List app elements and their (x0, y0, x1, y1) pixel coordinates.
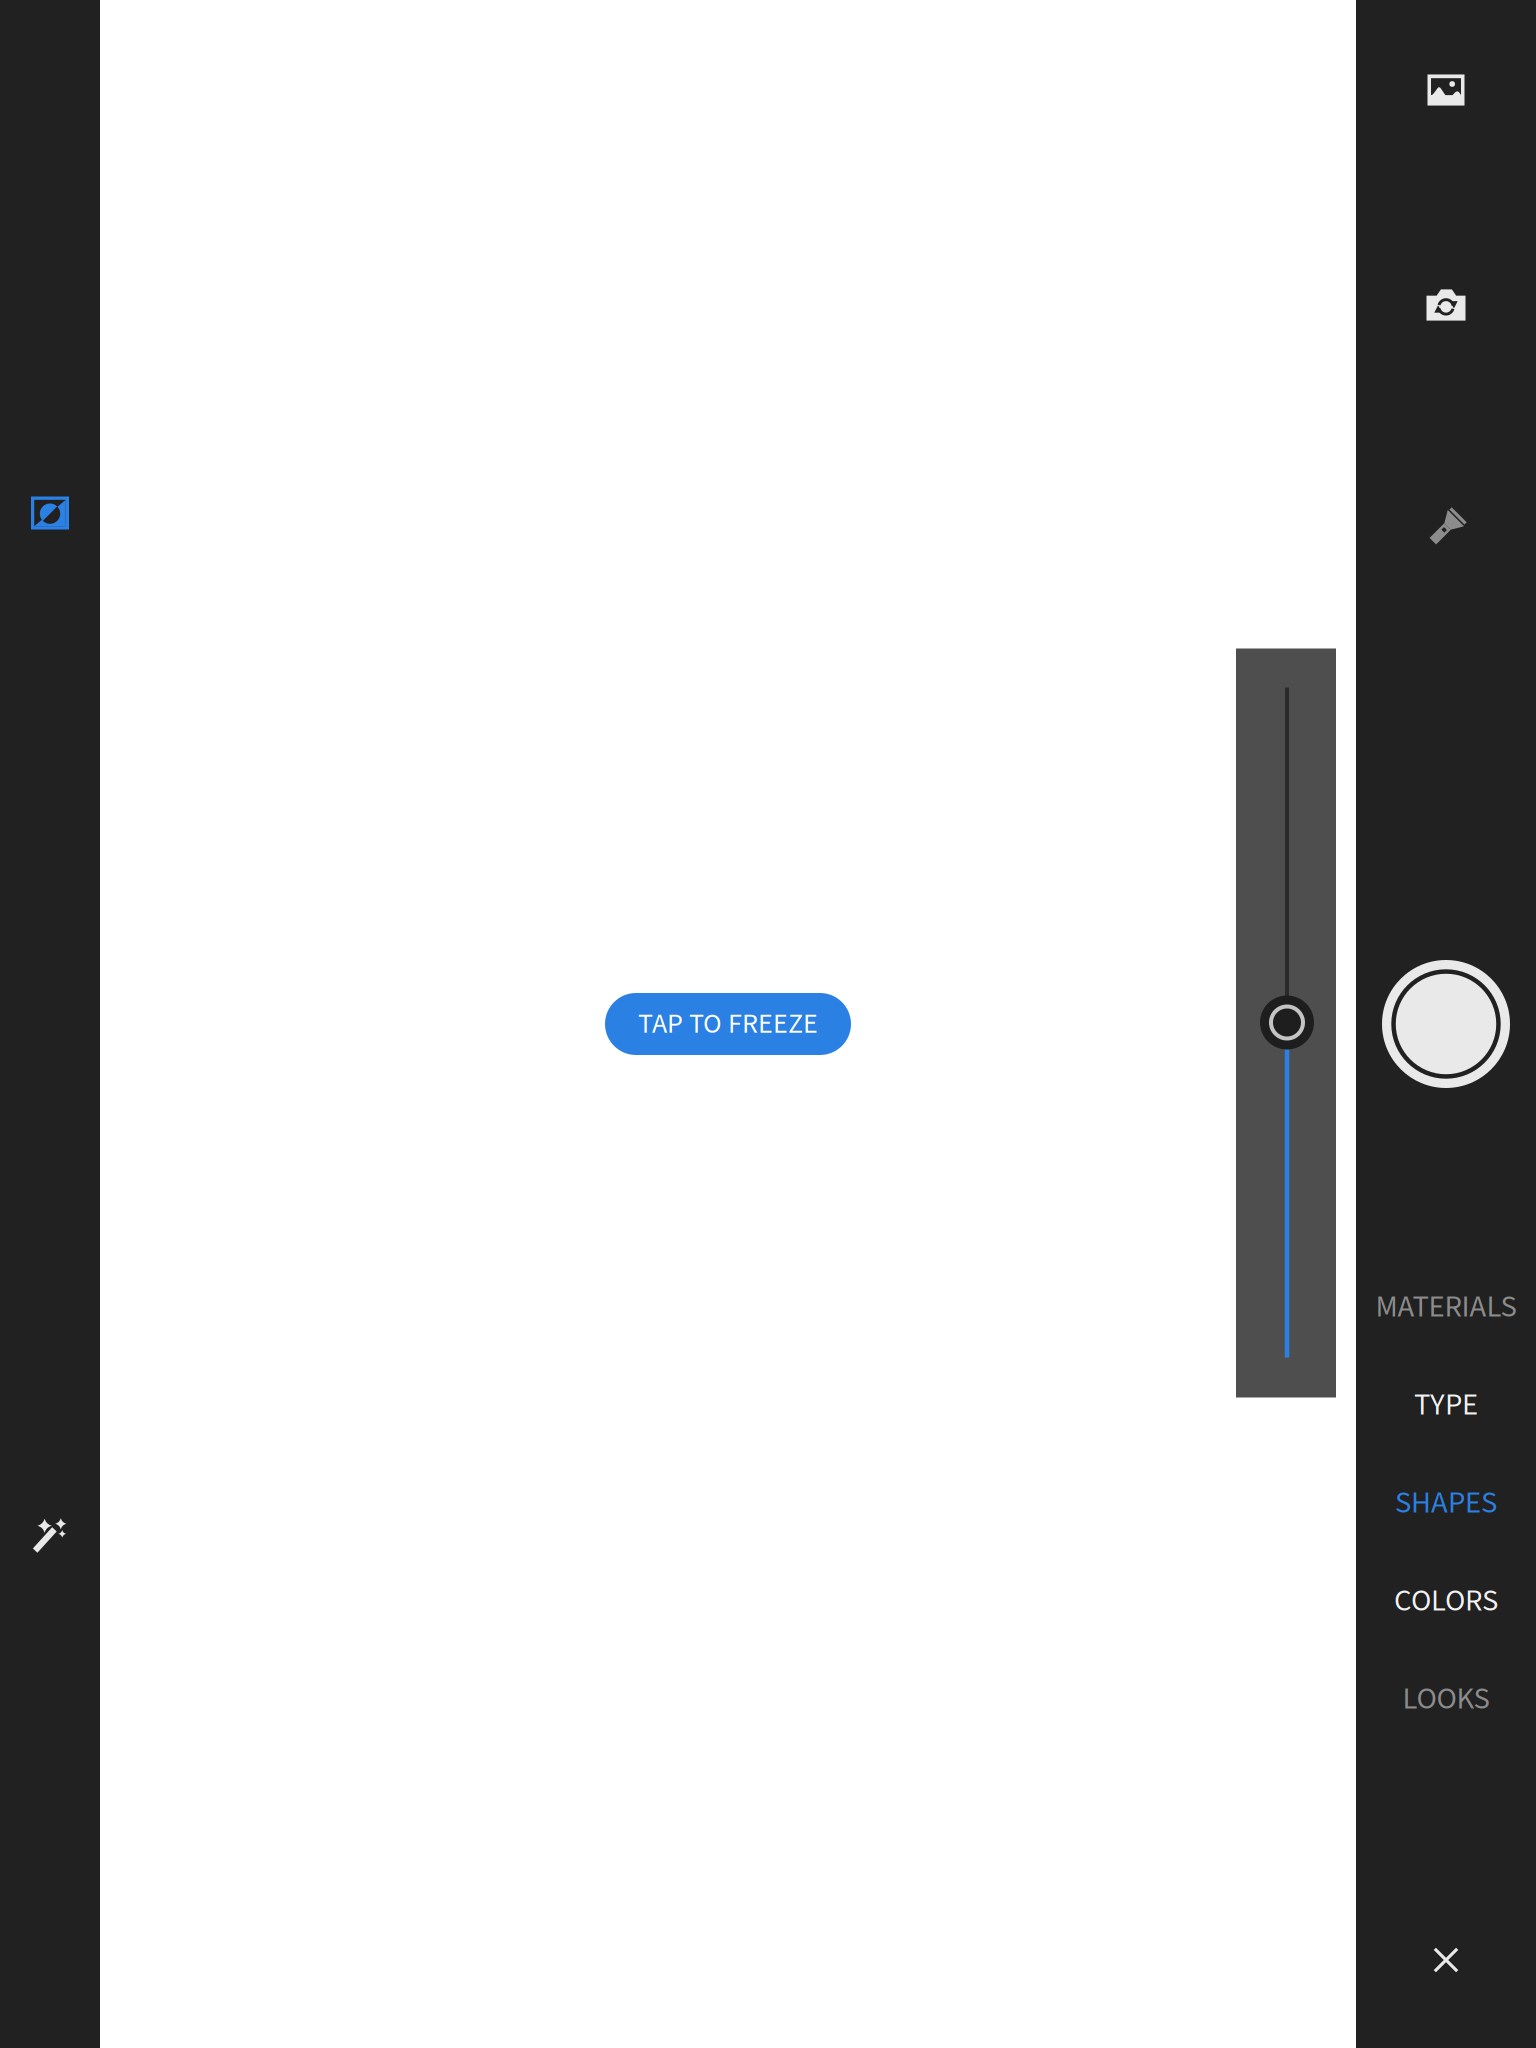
button[interactable]: MATERIALS (1356, 1267, 1536, 1347)
staticText: SHAPES (1395, 1481, 1497, 1525)
button[interactable]: Close (1391, 1905, 1501, 2015)
button[interactable]: Photo library (1386, 30, 1506, 150)
staticText: TAP TO FREEZE (638, 1004, 818, 1044)
staticText: COLORS (1394, 1579, 1498, 1623)
button[interactable]: LOOKS (1356, 1659, 1536, 1739)
button[interactable]: Capture (1366, 944, 1526, 1104)
staticText: LOOKS (1402, 1677, 1489, 1721)
button[interactable]: TYPE (1356, 1365, 1536, 1445)
button[interactable]: COLORS (1356, 1561, 1536, 1641)
button[interactable]: Flash (1386, 468, 1506, 588)
staticText: MATERIALS (1375, 1285, 1516, 1329)
button[interactable]: Switch camera (1386, 245, 1506, 365)
button[interactable]: Auto enhance (0, 1486, 100, 1586)
button[interactable]: Shape mask (0, 463, 100, 563)
staticText: TYPE (1414, 1383, 1478, 1427)
button[interactable]: SHAPES (1356, 1463, 1536, 1543)
button[interactable]: TAP TO FREEZE (605, 993, 851, 1055)
